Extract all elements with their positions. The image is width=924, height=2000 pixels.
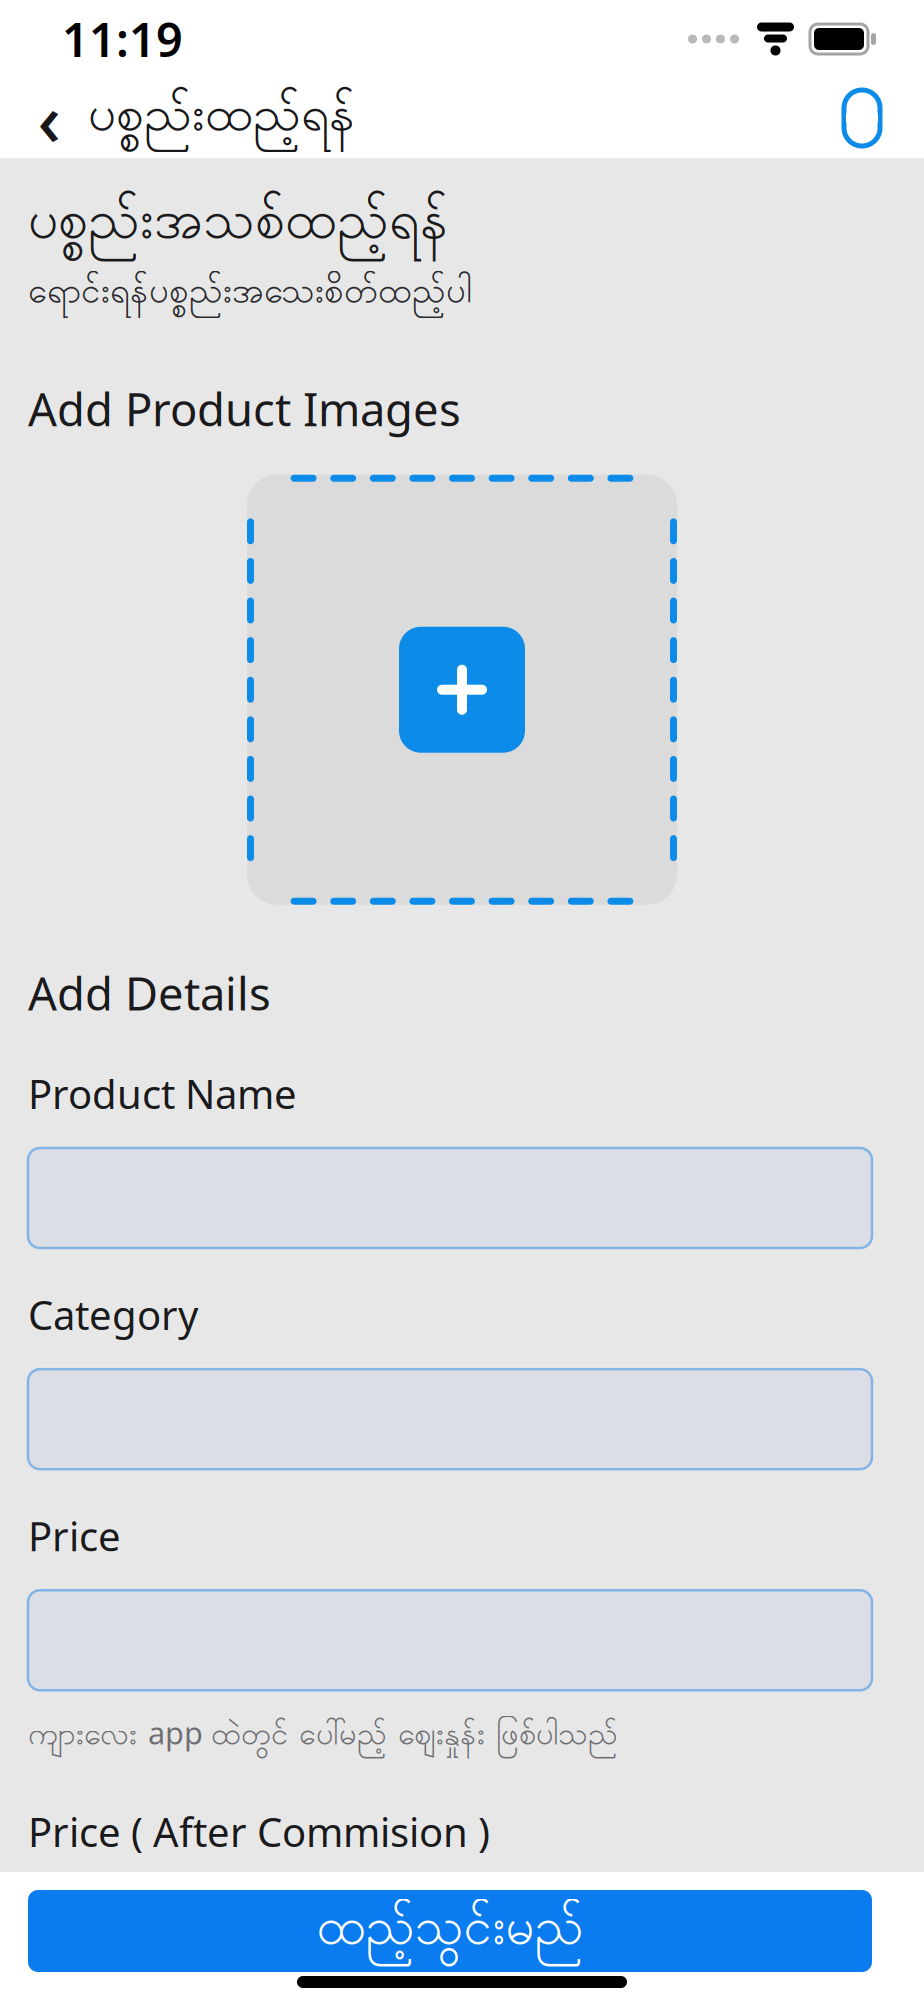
staticText: Add Details (28, 963, 271, 1023)
staticText: ကျားလေး app ထဲတွင် ပေါ်မည့် ဈေးနှုန်း ဖြ… (28, 1712, 618, 1759)
staticText: Price ( After Commision ) (28, 1805, 490, 1858)
staticText: Category (28, 1288, 198, 1341)
staticText: Product Name (28, 1067, 297, 1120)
staticText: Add Product Images (28, 378, 461, 439)
button[interactable]: ပစ္စည်းထည့်ရန် (74, 82, 356, 153)
staticText: ပစ္စည်းထည့်ရန် (88, 82, 356, 153)
staticText: ရောင်းရန်ပစ္စည်းအသေးစိတ်ထည့်ပါ (28, 269, 472, 318)
button[interactable] (28, 1590, 872, 1690)
button[interactable]: ထည့်သွင်းမည် (28, 1890, 872, 1972)
button[interactable] (28, 1369, 872, 1469)
staticText: ပစ္စည်းအသစ်ထည့်ရန် (28, 186, 449, 263)
staticText: Price (28, 1509, 121, 1562)
button[interactable] (28, 1148, 872, 1248)
button[interactable]: Back (24, 79, 74, 157)
staticText: ထည့်သွင်းမည် (316, 1895, 583, 1967)
staticText: ‹ (37, 70, 60, 166)
button[interactable]: Call (826, 79, 898, 157)
staticText: 11:19 (62, 8, 183, 70)
button[interactable]: Add product image (247, 475, 677, 905)
